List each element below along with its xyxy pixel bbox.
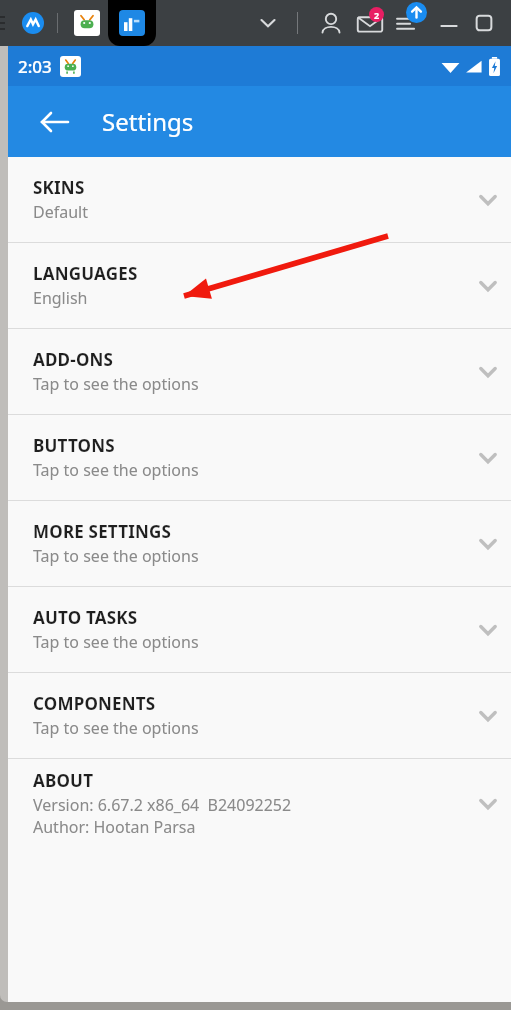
button[interactable]: BUTTONS [8,415,511,500]
button[interactable]: ABOUT [8,759,511,848]
button[interactable]: Account [314,6,348,40]
button[interactable]: Maximize [468,7,500,39]
button[interactable]: SKINS [8,157,511,242]
button[interactable]: MORE SETTINGS [8,501,511,586]
staticText: Settings [102,105,194,138]
button[interactable]: COMPONENTS [8,673,511,758]
staticText: Tap to see the options [33,717,199,739]
staticText: Tap to see the options [33,545,199,567]
staticText: AUTO TASKS [33,606,138,629]
staticText: ADD-ONS [33,348,114,371]
staticText: Version: 6.67.2 x86_64 B24092252 [33,794,292,816]
staticText: 2:03 [18,55,52,78]
staticText: COMPONENTS [33,692,156,715]
staticText: Author: Hootan Parsa [33,816,196,838]
button[interactable]: Back [31,98,79,146]
button[interactable]: ADD-ONS [8,329,511,414]
button[interactable]: Messages, 2 unread [352,5,388,41]
button[interactable]: LANGUAGES [8,243,511,328]
button[interactable]: Expand [252,7,284,39]
button[interactable]: AUTO TASKS [8,587,511,672]
staticText: Tap to see the options [33,373,199,395]
button[interactable]: Selected emulator tab [108,0,156,46]
staticText: LANGUAGES [33,262,138,285]
staticText: 2 [374,9,380,21]
staticText: Tap to see the options [33,459,199,481]
staticText: Default [33,201,88,223]
button[interactable]: App logo [22,12,44,34]
staticText: MORE SETTINGS [33,520,172,543]
button[interactable]: Emulator tab [74,10,100,36]
staticText: Tap to see the options [33,631,199,653]
staticText: ABOUT [33,769,94,792]
staticText: BUTTONS [33,434,115,457]
staticText: SKINS [33,176,85,199]
button[interactable]: Minimize [434,8,464,38]
button[interactable]: Menu, update available [392,5,428,41]
staticText: English [33,287,88,309]
